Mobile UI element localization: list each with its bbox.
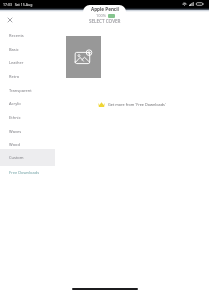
button[interactable]: Basic	[0, 42, 55, 56]
button[interactable]: Wood	[0, 137, 55, 151]
button[interactable]: Get more from 'Free Downloads'	[58, 97, 209, 111]
staticText: Waves	[9, 129, 22, 134]
staticText: Apple Pencil	[91, 6, 119, 12]
button[interactable]: Close	[0, 12, 20, 28]
staticText: 17:03 Sat 15-Aug	[3, 2, 33, 7]
staticText: Get more from 'Free Downloads'	[108, 102, 166, 107]
staticText: Basic	[9, 47, 19, 52]
button[interactable]: Add cover	[66, 36, 101, 78]
staticText: 100%	[96, 13, 107, 18]
button[interactable]: Acrylic	[0, 96, 55, 110]
button[interactable]: Free Downloads	[0, 165, 55, 179]
button[interactable]: Custom	[0, 149, 55, 166]
button[interactable]: Leather	[0, 55, 55, 69]
staticText: Free Downloads	[9, 170, 40, 175]
staticText: Leather	[9, 60, 24, 65]
button[interactable]: Waves	[0, 124, 55, 138]
button[interactable]: Recents	[0, 28, 55, 42]
staticText: Retro	[9, 74, 20, 79]
button[interactable]: Apple Pencil	[83, 5, 126, 19]
button[interactable]: Ethnic	[0, 110, 55, 124]
staticText: Ethnic	[9, 115, 21, 120]
button[interactable]: Retro	[0, 69, 55, 83]
staticText: Custom	[9, 155, 24, 160]
staticText: Transparent	[9, 88, 32, 93]
staticText: Recents	[9, 33, 24, 38]
staticText: Acrylic	[9, 101, 22, 106]
staticText: SELECT COVER	[89, 18, 121, 24]
button[interactable]: Transparent	[0, 83, 55, 97]
staticText: Wood	[9, 142, 20, 147]
